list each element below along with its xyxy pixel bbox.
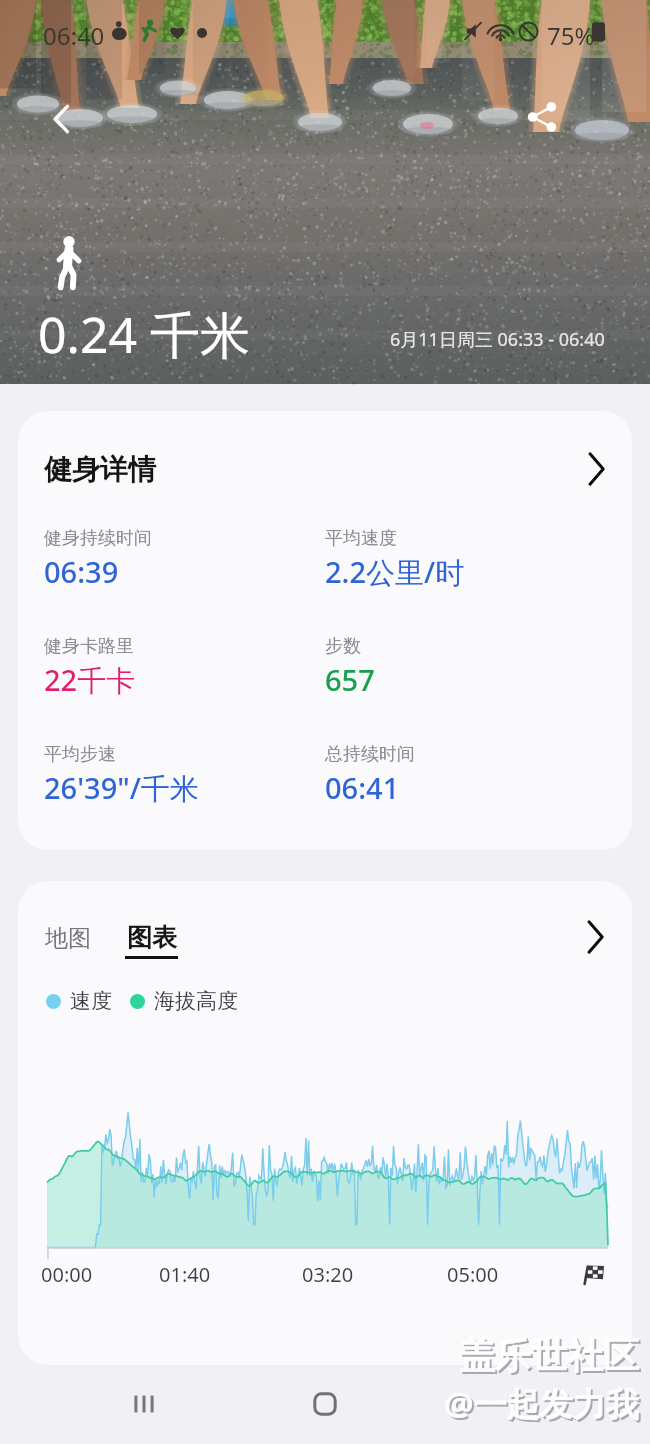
staticText: 盖乐世社区 <box>459 1333 639 1378</box>
button[interactable]: Share <box>514 89 570 145</box>
staticText: 盖乐世社区 <box>461 1335 641 1380</box>
staticText: 平均速度 <box>325 527 397 550</box>
button[interactable]: 图表 <box>119 922 184 959</box>
staticText: 0.24 千米 <box>38 300 251 368</box>
staticText: 图表 <box>127 922 177 953</box>
button[interactable]: 地图 <box>39 924 97 953</box>
staticText: 海拔高度 <box>154 988 238 1014</box>
button[interactable]: Home <box>297 1376 353 1432</box>
staticText: 6月11日周三 06:33 - 06:40 <box>390 327 605 352</box>
staticText: 步数 <box>325 635 361 658</box>
button[interactable]: 健身详情 <box>18 411 632 515</box>
staticText: 01:40 <box>159 1261 211 1288</box>
button[interactable]: Back <box>34 91 90 147</box>
button[interactable]: Back <box>478 1376 534 1432</box>
staticText: 06:40 <box>43 19 105 52</box>
staticText: 06:39 <box>44 552 119 591</box>
staticText: 速度 <box>70 988 112 1014</box>
staticText: 06:41 <box>325 768 400 807</box>
button[interactable]: Open chart details <box>583 917 607 957</box>
staticText: 健身卡路里 <box>44 635 134 658</box>
staticText: 健身持续时间 <box>44 527 152 550</box>
button[interactable]: Recent apps <box>116 1376 172 1432</box>
staticText: @一起发力我 <box>446 1383 641 1428</box>
staticText: 2.2公里/时 <box>325 552 465 592</box>
staticText: 03:20 <box>302 1261 354 1288</box>
staticText: 00:00 <box>41 1261 93 1288</box>
staticText: 26'39"/千米 <box>44 768 199 808</box>
staticText: 75% <box>547 19 595 52</box>
staticText: 健身详情 <box>44 452 156 487</box>
staticText: 总持续时间 <box>325 743 415 766</box>
staticText: 05:00 <box>447 1261 499 1288</box>
staticText: @一起发力我 <box>444 1381 639 1426</box>
staticText: 22千卡 <box>44 660 136 700</box>
staticText: 地图 <box>45 924 91 953</box>
staticText: 平均步速 <box>44 743 116 766</box>
staticText: 657 <box>325 660 375 699</box>
